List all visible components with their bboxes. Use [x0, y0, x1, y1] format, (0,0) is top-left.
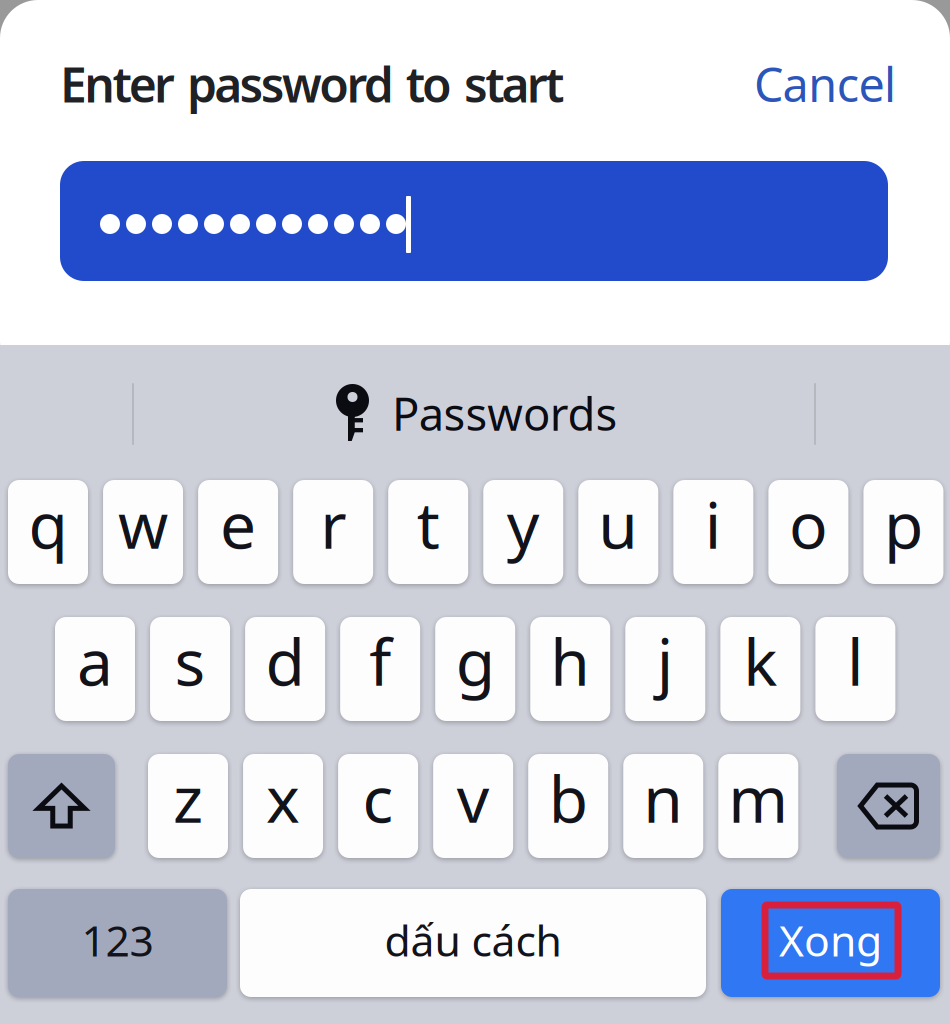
staticText: to	[406, 52, 452, 116]
staticText: c	[363, 755, 394, 840]
button[interactable]: n	[623, 754, 703, 858]
button[interactable]: w	[103, 480, 183, 584]
staticText: p	[884, 481, 923, 566]
staticText: Cancel	[754, 53, 896, 115]
staticText: d	[266, 618, 305, 703]
staticText: w	[118, 481, 168, 566]
staticText: b	[549, 755, 588, 840]
staticText: e	[220, 481, 256, 566]
button[interactable]: o	[768, 480, 848, 584]
button[interactable]: Shift	[8, 754, 115, 858]
staticText: g	[456, 618, 495, 703]
button[interactable]: b	[528, 754, 608, 858]
staticText: l	[847, 618, 864, 703]
button[interactable]: j	[625, 617, 705, 721]
staticText: r	[320, 481, 346, 566]
button[interactable]: d	[245, 617, 325, 721]
button[interactable]: a	[55, 617, 135, 721]
staticText: q	[28, 481, 67, 566]
staticText: v	[457, 755, 490, 840]
button[interactable]: Delete	[837, 754, 940, 858]
staticText: t	[417, 481, 440, 566]
button[interactable]: Cancel	[738, 41, 922, 115]
staticText: x	[266, 755, 300, 840]
button[interactable]: x	[243, 754, 323, 858]
button[interactable]: f	[340, 617, 420, 721]
button[interactable]: g	[435, 617, 515, 721]
staticText: f	[369, 618, 391, 703]
staticText: password	[187, 52, 394, 116]
button[interactable]: c	[338, 754, 418, 858]
button[interactable]: Passwords	[320, 378, 630, 448]
button[interactable]: m	[718, 754, 798, 858]
staticText: u	[598, 481, 638, 566]
button[interactable]: q	[8, 480, 88, 584]
button[interactable]: 123	[8, 889, 227, 997]
button[interactable]: p	[863, 480, 943, 584]
staticText: start	[464, 52, 564, 116]
staticText: m	[728, 755, 788, 840]
button[interactable]: i	[673, 480, 753, 584]
staticText: Passwords	[392, 383, 617, 443]
button[interactable]: v	[433, 754, 513, 858]
button[interactable]: dấu cách	[240, 889, 706, 997]
staticText: j	[657, 618, 674, 703]
staticText: Enter	[60, 52, 175, 116]
button[interactable]: u	[578, 480, 658, 584]
button[interactable]: k	[720, 617, 800, 721]
staticText: Xong	[779, 912, 882, 968]
button[interactable]: h	[530, 617, 610, 721]
staticText: s	[175, 618, 206, 703]
button[interactable]: t	[388, 480, 468, 584]
staticText: o	[789, 481, 828, 566]
staticText: 123	[81, 912, 153, 968]
staticText: y	[507, 481, 540, 566]
button[interactable]: z	[148, 754, 228, 858]
staticText: h	[550, 618, 590, 703]
button[interactable]: y	[483, 480, 563, 584]
button[interactable]: Xong	[721, 889, 940, 997]
staticText: z	[173, 755, 203, 840]
staticText: k	[743, 618, 777, 703]
staticText: n	[643, 755, 683, 840]
staticText: dấu cách	[384, 912, 561, 968]
button[interactable]: s	[150, 617, 230, 721]
button[interactable]: e	[198, 480, 278, 584]
button[interactable]: r	[293, 480, 373, 584]
button[interactable]: l	[815, 617, 895, 721]
staticText: a	[77, 618, 113, 703]
staticText: i	[705, 481, 722, 566]
